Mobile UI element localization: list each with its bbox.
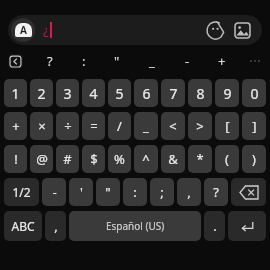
button[interactable]: ; — [150, 178, 174, 206]
button[interactable]: ? — [36, 47, 64, 75]
button[interactable]: Stickers — [204, 19, 226, 41]
button[interactable]: + — [208, 47, 236, 75]
staticText: + — [12, 117, 20, 135]
button[interactable]: 0 — [242, 79, 266, 107]
staticText: ÷ — [64, 117, 72, 135]
staticText: ' — [80, 183, 83, 201]
button[interactable]: _ — [138, 47, 166, 75]
button[interactable]: 3 — [56, 79, 79, 107]
button[interactable]: $ — [82, 145, 105, 173]
button[interactable]: - — [173, 47, 201, 75]
staticText: × — [38, 117, 46, 135]
staticText: 0 — [250, 84, 259, 103]
button[interactable]: × — [30, 112, 53, 140]
staticText: = — [90, 117, 98, 135]
button[interactable]: : — [70, 47, 98, 75]
button[interactable]: ! — [4, 145, 27, 173]
button[interactable]: : — [123, 178, 147, 206]
button[interactable]: ^ — [134, 145, 158, 173]
staticText: > — [196, 117, 204, 135]
button[interactable]: < — [161, 112, 185, 140]
button[interactable]: 9 — [215, 79, 239, 107]
staticText: 8 — [196, 84, 205, 103]
staticText: 7 — [169, 84, 178, 103]
button[interactable]: # — [56, 145, 79, 173]
staticText: + — [218, 52, 226, 70]
button[interactable]: ÷ — [56, 112, 79, 140]
staticText: # — [63, 150, 72, 168]
staticText: 1/2 — [12, 184, 31, 200]
staticText: * — [196, 150, 204, 168]
button[interactable]: , — [45, 211, 66, 241]
button[interactable]: Español (US) — [69, 211, 201, 241]
staticText: ABC — [11, 218, 35, 234]
staticText: ! — [14, 150, 18, 168]
button[interactable]: Enter — [228, 211, 266, 241]
staticText: 9 — [223, 84, 232, 103]
staticText: & — [168, 150, 178, 168]
button[interactable]: Back — [8, 54, 23, 69]
button[interactable]: ? — [204, 178, 228, 206]
staticText: - — [185, 52, 190, 70]
staticText: " — [105, 183, 111, 201]
button[interactable]: 8 — [188, 79, 212, 107]
button[interactable]: + — [4, 112, 27, 140]
staticText: Español (US) — [106, 219, 165, 233]
button[interactable]: @ — [30, 145, 53, 173]
staticText: 5 — [115, 84, 124, 103]
button[interactable]: 1 — [4, 79, 27, 107]
button[interactable]: 6 — [134, 79, 158, 107]
button[interactable]: Images — [231, 19, 253, 41]
staticText: , — [54, 217, 58, 235]
staticText: : — [133, 183, 137, 201]
staticText: _ — [143, 117, 149, 135]
button[interactable]: > — [188, 112, 212, 140]
staticText: [ — [225, 117, 230, 135]
button[interactable]: Language — [11, 18, 35, 42]
staticText: - — [52, 183, 57, 201]
staticText: 1 — [11, 84, 20, 103]
staticText: @ — [36, 150, 48, 168]
button[interactable]: ' — [69, 178, 93, 206]
staticText: $ — [90, 150, 98, 168]
button[interactable]: - — [42, 178, 66, 206]
button[interactable]: ] — [242, 112, 266, 140]
button[interactable]: 7 — [161, 79, 185, 107]
button[interactable]: " — [96, 178, 120, 206]
staticText: ( — [225, 150, 229, 168]
staticText: 6 — [142, 84, 151, 103]
staticText: ? — [213, 183, 219, 201]
button[interactable]: . — [204, 211, 225, 241]
staticText: : — [82, 52, 86, 70]
button[interactable]: More — [242, 48, 268, 74]
staticText: 4 — [89, 84, 98, 103]
staticText: ^ — [142, 150, 150, 168]
staticText: < — [169, 117, 177, 135]
button[interactable]: 1/2 — [4, 178, 39, 206]
button[interactable]: ) — [242, 145, 266, 173]
button[interactable]: % — [108, 145, 131, 173]
button[interactable]: " — [103, 47, 131, 75]
button[interactable]: & — [161, 145, 185, 173]
button[interactable]: ( — [215, 145, 239, 173]
button[interactable]: ABC — [4, 211, 42, 241]
staticText: / — [117, 117, 122, 135]
staticText: . — [213, 217, 217, 235]
button[interactable]: * — [188, 145, 212, 173]
staticText: ? — [47, 52, 53, 70]
staticText: % — [114, 150, 125, 168]
button[interactable]: 2 — [30, 79, 53, 107]
button[interactable]: [ — [215, 112, 239, 140]
button[interactable]: , — [177, 178, 201, 206]
button[interactable]: = — [82, 112, 105, 140]
button[interactable]: / — [108, 112, 131, 140]
staticText: A — [20, 23, 27, 37]
button[interactable]: 4 — [82, 79, 105, 107]
button[interactable]: _ — [134, 112, 158, 140]
staticText: ; — [160, 183, 164, 201]
button[interactable]: Backspace — [231, 178, 266, 206]
staticText: 2 — [37, 84, 46, 103]
staticText: _ — [149, 52, 155, 70]
staticText: ] — [252, 117, 257, 135]
button[interactable]: 5 — [108, 79, 131, 107]
